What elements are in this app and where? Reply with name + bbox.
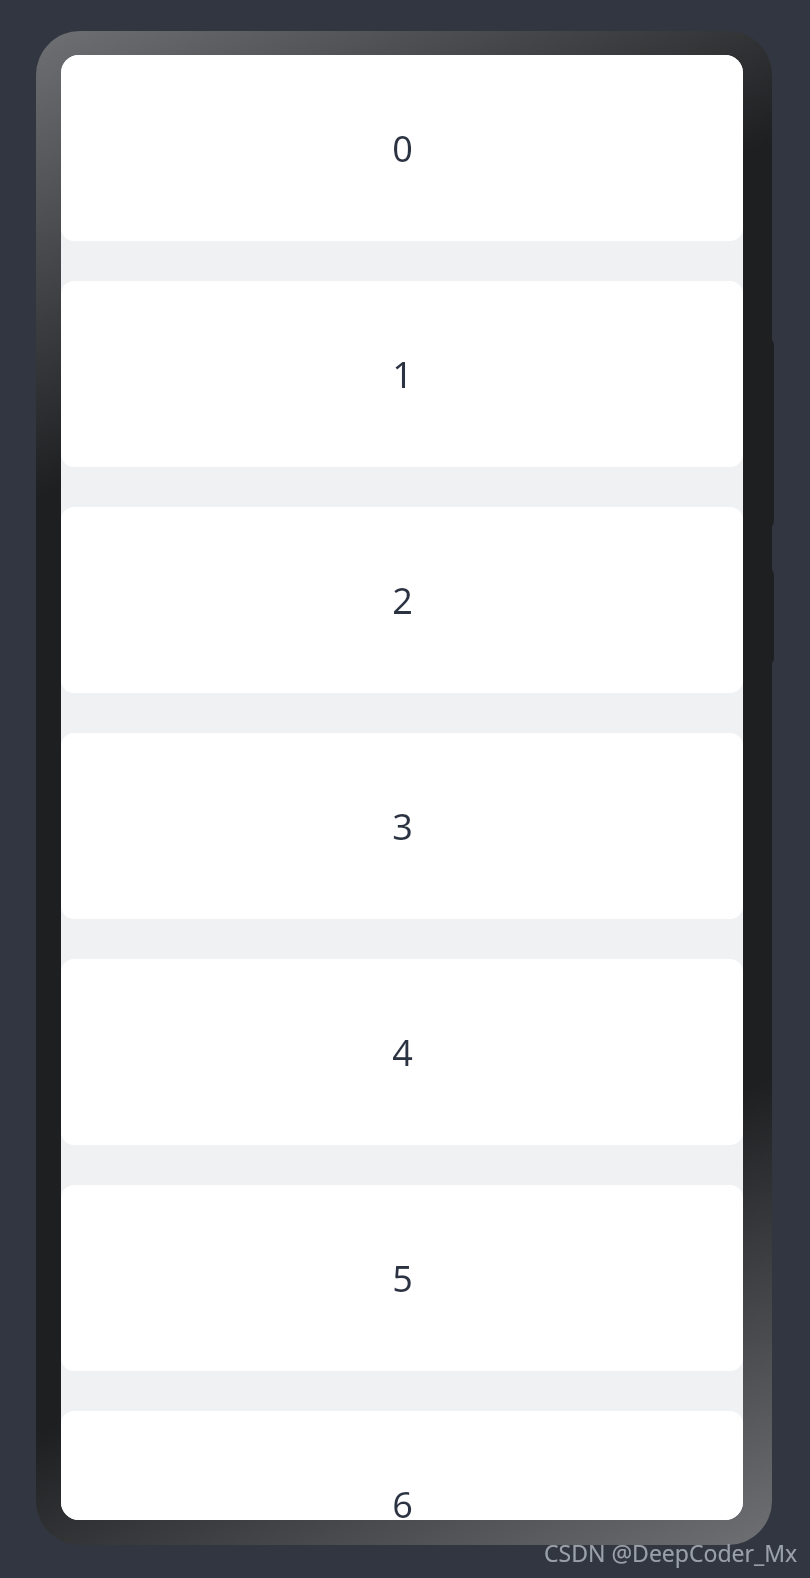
button[interactable]: 0 xyxy=(61,55,743,241)
staticText: 5 xyxy=(392,1254,413,1303)
staticText: 4 xyxy=(392,1028,413,1077)
button[interactable] xyxy=(760,568,774,665)
button[interactable]: 6 xyxy=(61,1411,743,1520)
button[interactable]: 2 xyxy=(61,507,743,693)
button[interactable]: 3 xyxy=(61,733,743,919)
button[interactable]: 4 xyxy=(61,959,743,1145)
staticText: 0 xyxy=(392,124,413,173)
staticText: 1 xyxy=(392,350,413,399)
staticText: 6 xyxy=(392,1480,413,1520)
button[interactable]: 1 xyxy=(61,281,743,467)
staticText: 2 xyxy=(392,576,413,625)
staticText: CSDN @DeepCoder_Mx xyxy=(544,1537,798,1568)
button[interactable]: 5 xyxy=(61,1185,743,1371)
staticText: 3 xyxy=(392,802,413,851)
